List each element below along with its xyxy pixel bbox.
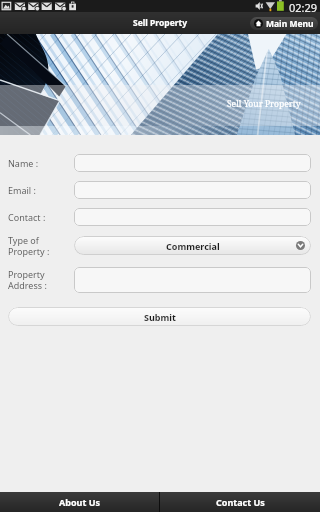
other: Open property type list [296,241,305,250]
button[interactable]: Main Menu [250,17,318,30]
staticText: Commercial [166,240,220,252]
staticText: About Us [59,496,100,508]
button[interactable] [74,181,311,199]
staticText: Name : [8,157,39,169]
button[interactable]: About Us [0,492,159,512]
staticText: 02:29 [289,0,318,12]
button[interactable] [74,267,311,293]
staticText: Contact : [8,211,46,223]
staticText: Type of Property : [8,234,50,258]
staticText: Sell Your Property [227,98,301,110]
button[interactable]: Submit [8,307,311,326]
button[interactable] [74,208,311,226]
staticText: Main Menu [266,18,314,30]
button[interactable] [74,154,311,172]
staticText: Sell Property [133,17,188,29]
staticText: Contact Us [216,496,265,508]
staticText: Property Address : [8,268,47,292]
button[interactable]: Contact Us [160,492,320,512]
button[interactable]: Commercial [74,236,311,255]
staticText: Email : [8,184,36,196]
staticText: Submit [144,311,176,323]
